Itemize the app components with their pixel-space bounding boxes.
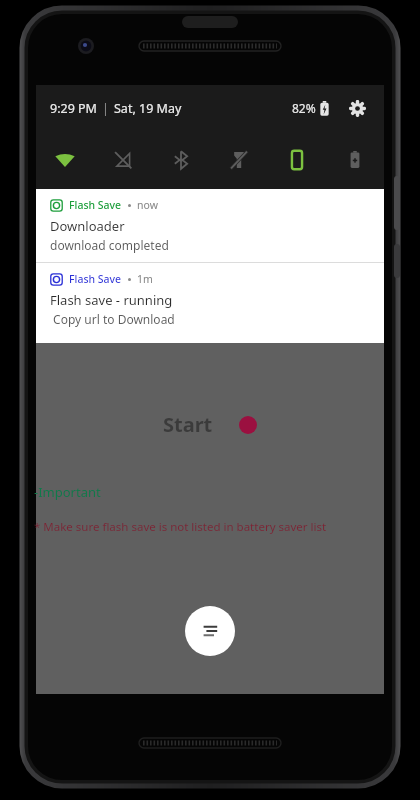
- button[interactable]: Flashlight off: [210, 131, 268, 189]
- button[interactable]: Flash Save: [36, 263, 384, 336]
- button[interactable]: Flash Save: [36, 189, 384, 262]
- button[interactable]: Bluetooth: [152, 131, 210, 189]
- staticText: Flash Save: [69, 198, 122, 212]
- staticText: Downloader: [50, 217, 125, 235]
- staticText: Start: [163, 411, 213, 438]
- staticText: |: [102, 100, 109, 117]
- staticText: Flash save - running: [50, 291, 173, 309]
- staticText: 1m: [137, 272, 153, 286]
- button[interactable]: Auto rotate: [268, 131, 326, 189]
- staticText: Sat, 19 May: [114, 100, 182, 117]
- staticText: 82%: [292, 100, 316, 116]
- staticText: -Important: [34, 483, 101, 501]
- staticText: * Make sure flash save is not listed in …: [34, 519, 327, 535]
- staticText: download completed: [50, 237, 169, 253]
- button[interactable]: Mobile data off: [94, 131, 152, 189]
- staticText: 9:29 PM: [50, 100, 97, 117]
- button[interactable]: Settings: [346, 97, 368, 119]
- staticText: Copy url to Download: [50, 311, 175, 327]
- button[interactable]: Battery saver: [326, 131, 384, 189]
- staticText: Flash Save: [69, 272, 122, 286]
- staticText: now: [137, 198, 158, 212]
- button[interactable]: Wi-Fi: [36, 131, 94, 189]
- button[interactable]: Sort options: [185, 606, 235, 656]
